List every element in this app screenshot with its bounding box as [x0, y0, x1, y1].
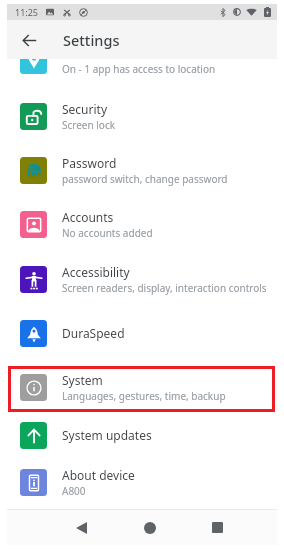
button[interactable]: Home: [130, 510, 170, 545]
staticText: Password: [62, 155, 117, 171]
staticText: Accessibility: [62, 264, 130, 280]
staticText: Languages, gestures, time, backup: [62, 389, 226, 403]
button[interactable]: System: [7, 364, 277, 410]
button[interactable]: Back: [61, 510, 101, 545]
button[interactable]: Back: [16, 27, 42, 53]
button[interactable]: Password: [7, 147, 277, 193]
button[interactable]: About device: [7, 459, 277, 505]
staticText: Accounts: [62, 209, 114, 225]
staticText: DuraSpeed: [62, 325, 125, 341]
staticText: Location: [62, 45, 111, 61]
staticText: Screen readers, display, interaction con…: [62, 281, 267, 295]
button[interactable]: Location: [7, 37, 277, 83]
button[interactable]: System updates: [7, 412, 277, 458]
staticText: Security: [62, 101, 108, 117]
staticText: password switch, change password: [62, 172, 228, 186]
button[interactable]: Security: [7, 93, 277, 139]
staticText: Settings: [63, 30, 120, 50]
staticText: System updates: [62, 427, 152, 443]
staticText: No accounts added: [62, 226, 153, 240]
staticText: System: [62, 372, 103, 388]
button[interactable]: Accounts: [7, 201, 277, 247]
staticText: On - 1 app has access to location: [62, 62, 216, 76]
staticText: 11:25: [15, 6, 39, 18]
button[interactable]: Accessibility: [7, 256, 277, 302]
staticText: Screen lock: [62, 118, 116, 132]
staticText: A800: [62, 484, 86, 498]
button[interactable]: DuraSpeed: [7, 310, 277, 356]
staticText: About device: [62, 467, 135, 483]
button[interactable]: Recents: [197, 510, 237, 545]
